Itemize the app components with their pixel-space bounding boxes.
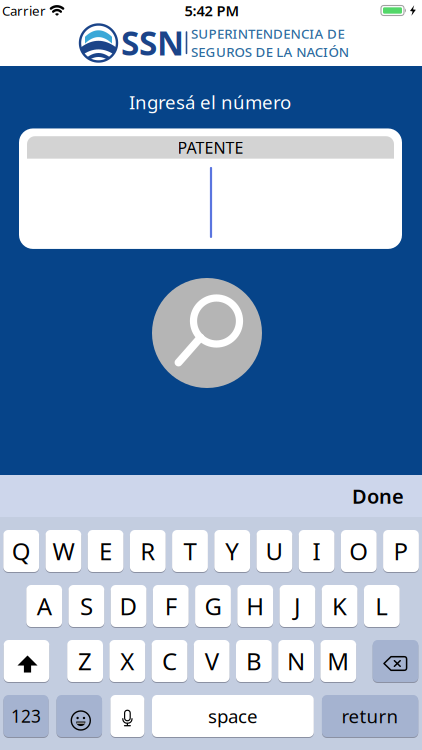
staticText: P	[393, 535, 408, 567]
staticText: Q	[12, 535, 31, 567]
button[interactable]: V	[194, 640, 230, 682]
button[interactable]: D	[111, 585, 146, 627]
staticText: D	[120, 590, 138, 622]
button[interactable]: Buscar	[152, 278, 262, 388]
button[interactable]: H	[237, 585, 273, 627]
button[interactable]: F	[153, 585, 189, 627]
staticText: U	[265, 535, 283, 567]
staticText: Carrier	[2, 2, 46, 19]
staticText: space	[208, 704, 258, 728]
staticText: E	[99, 535, 112, 567]
staticText: G	[204, 590, 221, 622]
button[interactable]: T	[172, 530, 208, 572]
button[interactable]: S	[68, 585, 104, 627]
staticText: C	[162, 645, 177, 677]
button[interactable]: Patente	[19, 128, 402, 249]
button[interactable]: G	[195, 585, 231, 627]
staticText: 123	[11, 704, 41, 727]
button[interactable]: K	[322, 585, 357, 627]
button[interactable]: return	[322, 695, 418, 737]
button[interactable]: Y	[214, 530, 250, 572]
staticText: H	[246, 590, 264, 622]
staticText: SUPERINTENDENCIA DE	[191, 25, 344, 42]
button[interactable]: Z	[67, 640, 103, 682]
staticText: SEGUROS DE LA NACIÓN	[191, 43, 349, 61]
staticText: M	[327, 645, 349, 677]
button[interactable]: A	[26, 585, 62, 627]
button[interactable]: Emoji	[56, 695, 102, 737]
staticText: O	[349, 535, 368, 567]
button[interactable]: E	[88, 530, 123, 572]
button[interactable]: Dictate	[110, 695, 144, 737]
staticText: L	[375, 590, 388, 622]
staticText: W	[52, 535, 74, 567]
button[interactable]: L	[364, 585, 400, 627]
button[interactable]: X	[109, 640, 145, 682]
button[interactable]: M	[320, 640, 356, 682]
button[interactable]: P	[383, 530, 419, 572]
staticText: Done	[352, 483, 404, 509]
staticText: return	[342, 704, 399, 728]
staticText: N	[287, 645, 305, 677]
staticText: F	[165, 590, 177, 622]
staticText: I	[313, 535, 321, 567]
button[interactable]: B	[236, 640, 272, 682]
staticText: Y	[225, 535, 239, 567]
button[interactable]: W	[45, 530, 81, 572]
staticText: X	[120, 645, 134, 677]
button[interactable]: R	[130, 530, 166, 572]
staticText: SSN	[121, 20, 184, 65]
button[interactable]: 123	[3, 695, 48, 737]
button[interactable]: Done	[348, 475, 408, 517]
button[interactable]: Shift	[4, 640, 49, 682]
button[interactable]: space	[152, 695, 314, 737]
staticText: Z	[78, 645, 92, 677]
button[interactable]: N	[278, 640, 314, 682]
button[interactable]: J	[279, 585, 315, 627]
button[interactable]: Delete	[373, 640, 418, 682]
staticText: Ingresá el número	[129, 90, 291, 114]
staticText: A	[37, 590, 52, 622]
staticText: J	[294, 590, 301, 622]
staticText: K	[332, 590, 347, 622]
staticText: 5:42 PM	[184, 1, 239, 20]
button[interactable]: U	[256, 530, 292, 572]
button[interactable]: O	[341, 530, 377, 572]
staticText: PATENTE	[177, 137, 243, 158]
button[interactable]: Q	[3, 530, 39, 572]
staticText: V	[205, 645, 219, 677]
staticText: R	[140, 535, 155, 567]
staticText: S	[80, 590, 93, 622]
button[interactable]: C	[152, 640, 187, 682]
staticText: T	[183, 535, 196, 567]
button[interactable]: I	[299, 530, 334, 572]
staticText: B	[246, 645, 262, 677]
